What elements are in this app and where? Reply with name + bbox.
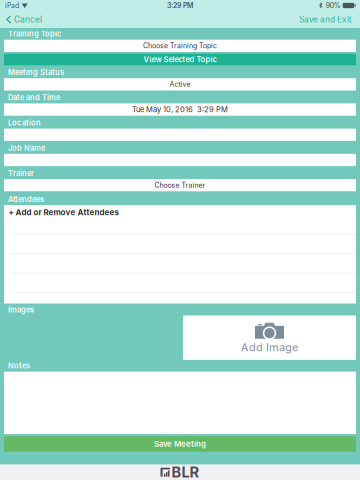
- button[interactable]: Cancel: [0, 11, 50, 28]
- button[interactable]: Tue May 10, 2016 3:29 PM: [4, 103, 356, 116]
- staticText: Choose Trainer: [154, 181, 205, 189]
- staticText: 90%: [326, 1, 341, 10]
- staticText: Notes: [8, 361, 30, 370]
- staticText: Date and Time: [8, 93, 60, 102]
- staticText: 3:29 PM: [167, 1, 193, 10]
- staticText: Save Meeting: [154, 439, 206, 449]
- staticText: Cancel: [14, 14, 42, 25]
- staticText: Location: [8, 118, 41, 127]
- button[interactable]: View Selected Topic: [4, 54, 356, 65]
- staticText: Training Topic: [8, 29, 61, 38]
- button[interactable]: Save and Exit: [291, 11, 360, 28]
- staticText: + Add or Remove Attendees: [8, 207, 118, 217]
- button[interactable]: Choose Training Topic: [4, 40, 356, 52]
- staticText: Tue May 10, 2016 3:29 PM: [132, 105, 228, 114]
- button[interactable]: Add Image: [183, 315, 356, 360]
- staticText: Meeting Status: [8, 68, 64, 77]
- button[interactable]: + Add or Remove Attendees: [4, 205, 356, 234]
- staticText: Add Image: [241, 341, 298, 354]
- staticText: Attendees: [8, 195, 44, 204]
- staticText: View Selected Topic: [143, 55, 216, 64]
- staticText: Active: [169, 80, 190, 89]
- staticText: Images: [8, 305, 34, 314]
- staticText: Choose Training Topic: [143, 42, 217, 50]
- staticText: iPad: [5, 1, 19, 10]
- button[interactable]: Save Meeting: [4, 436, 356, 452]
- staticText: Trainer: [8, 169, 34, 178]
- staticText: BLR: [171, 463, 199, 480]
- staticText: Job Name: [8, 143, 45, 153]
- staticText: Save and Exit: [299, 14, 352, 24]
- button[interactable]: Choose Trainer: [4, 179, 356, 191]
